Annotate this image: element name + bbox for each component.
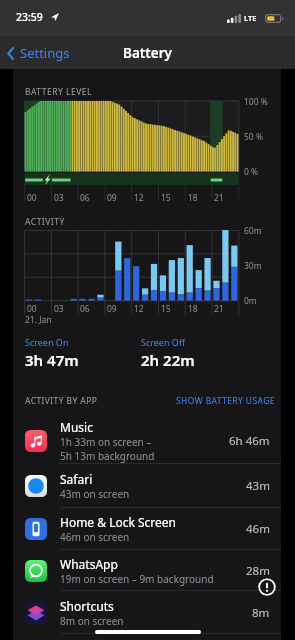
staticText: Shortcuts <box>60 598 114 614</box>
staticText: 2h 22m <box>141 350 195 370</box>
staticText: 21 <box>214 192 224 204</box>
button[interactable]: Music <box>13 417 281 464</box>
staticText: 15 <box>161 303 171 315</box>
button[interactable]: Shortcuts <box>13 591 281 634</box>
staticText: 21. Jan <box>25 314 52 326</box>
staticText: 28m <box>246 563 270 579</box>
staticText: 21 <box>214 303 224 315</box>
staticText: 0m <box>244 295 257 307</box>
staticText: 100 % <box>244 96 268 108</box>
button[interactable]: Settings <box>0 40 78 66</box>
button[interactable]: Home & Lock Screen <box>13 507 281 550</box>
staticText: 18 <box>188 192 198 204</box>
staticText: BATTERY LEVEL <box>25 86 92 98</box>
staticText: 43m <box>246 478 270 494</box>
staticText: 00 <box>27 303 37 315</box>
button[interactable]: WhatsApp <box>13 550 281 591</box>
staticText: 03 <box>54 303 64 315</box>
staticText: 09 <box>107 303 117 315</box>
staticText: Screen On <box>25 336 69 348</box>
staticText: 1h 33m on screen – <box>60 435 152 449</box>
staticText: 15 <box>161 192 171 204</box>
staticText: 0 % <box>244 166 259 178</box>
staticText: 00 <box>27 192 37 204</box>
staticText: Safari <box>60 471 93 487</box>
staticText: 50 % <box>244 131 263 143</box>
staticText: Music <box>60 419 93 435</box>
staticText: 8m <box>252 605 270 621</box>
staticText: 43m on screen <box>60 487 130 501</box>
staticText: 19m on screen – 9m background <box>60 572 214 586</box>
staticText: 12 <box>134 303 144 315</box>
staticText: 5h 13m background <box>60 449 155 463</box>
staticText: Settings <box>20 44 70 62</box>
staticText: 03 <box>54 192 64 204</box>
staticText: 8m on screen <box>60 614 124 628</box>
staticText: 12 <box>134 192 144 204</box>
staticText: Home & Lock Screen <box>60 514 177 530</box>
staticText: 06 <box>80 303 90 315</box>
staticText: Battery <box>123 44 172 62</box>
staticText: Screen Off <box>141 336 186 348</box>
button[interactable]: Battery usage notice <box>258 578 276 596</box>
button[interactable]: Safari <box>13 464 281 508</box>
staticText: 30m <box>244 260 262 272</box>
staticText: ACTIVITY <box>25 216 65 228</box>
staticText: 3h 47m <box>25 350 79 370</box>
staticText: SHOW BATTERY USAGE <box>176 395 275 407</box>
staticText: 09 <box>107 192 117 204</box>
staticText: 06 <box>80 192 90 204</box>
button[interactable]: SHOW BATTERY USAGE <box>176 395 275 407</box>
staticText: 60m <box>244 225 262 237</box>
staticText: 23:59 <box>16 10 43 24</box>
staticText: 46m <box>246 521 270 537</box>
staticText: LTE <box>244 13 257 23</box>
staticText: WhatsApp <box>60 556 118 572</box>
staticText: ACTIVITY BY APP <box>25 395 98 407</box>
staticText: 18 <box>188 303 198 315</box>
staticText: 6h 46m <box>229 433 270 449</box>
staticText: 46m on screen <box>60 530 130 544</box>
